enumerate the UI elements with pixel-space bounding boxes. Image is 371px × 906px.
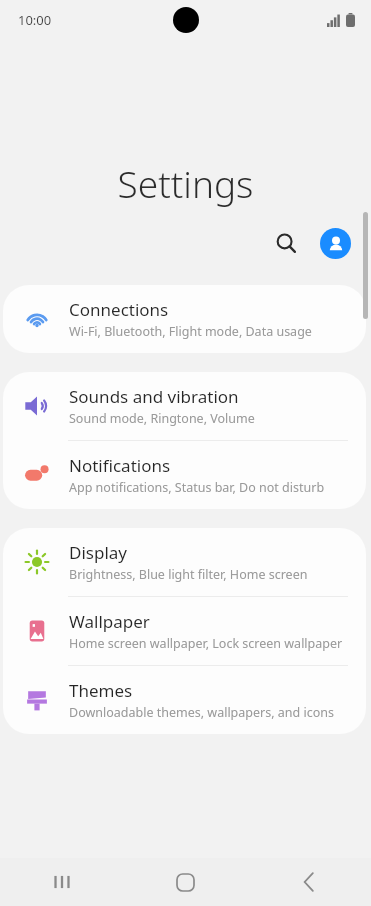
staticText: Wallpaper (69, 610, 150, 633)
staticText: Sound mode, Ringtone, Volume (69, 410, 255, 427)
button[interactable]: Themes (3, 666, 366, 734)
button[interactable]: Search (266, 223, 306, 263)
staticText: App notifications, Status bar, Do not di… (69, 479, 325, 496)
button[interactable]: Home (123, 858, 247, 906)
staticText: Connections (69, 298, 169, 321)
button[interactable]: Notifications (3, 441, 366, 509)
staticText: Downloadable themes, wallpapers, and ico… (69, 704, 334, 721)
button[interactable]: Account (320, 228, 351, 259)
button[interactable]: Wallpaper (3, 597, 366, 665)
staticText: Home screen wallpaper, Lock screen wallp… (69, 635, 343, 652)
staticText: Sounds and vibration (69, 385, 239, 408)
button[interactable]: Back (247, 858, 371, 906)
staticText: Settings (0, 158, 371, 208)
staticText: Brightness, Blue light filter, Home scre… (69, 566, 308, 583)
button[interactable]: Recents (0, 858, 123, 906)
button[interactable]: Display (3, 528, 366, 596)
staticText: Wi-Fi, Bluetooth, Flight mode, Data usag… (69, 323, 312, 340)
staticText: Display (69, 541, 127, 564)
button[interactable]: Connections (3, 285, 366, 353)
button[interactable]: Sounds and vibration (3, 372, 366, 440)
staticText: Notifications (69, 454, 171, 477)
staticText: 10:00 (18, 11, 52, 29)
staticText: Themes (69, 679, 133, 702)
